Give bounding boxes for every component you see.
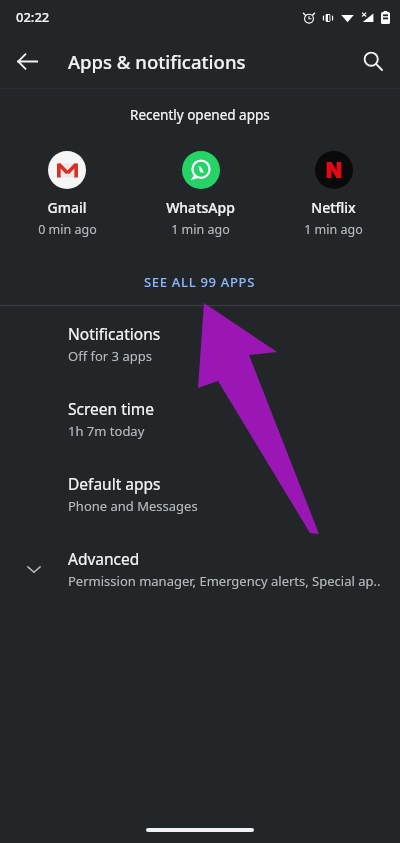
staticText: 1h 7m today bbox=[68, 422, 145, 440]
button[interactable]: SEE ALL 99 APPS bbox=[0, 262, 400, 302]
button[interactable]: Default apps bbox=[0, 456, 400, 531]
staticText: 02:22 bbox=[16, 8, 50, 26]
button[interactable]: Back bbox=[6, 40, 48, 82]
staticText: Permission manager, Emergency alerts, Sp… bbox=[68, 572, 381, 590]
staticText: 1 min ago bbox=[171, 221, 230, 238]
staticText: Notifications bbox=[68, 323, 161, 344]
button[interactable]: Notifications bbox=[0, 306, 400, 381]
button[interactable]: WhatsApp bbox=[134, 149, 267, 240]
staticText: Apps & notifications bbox=[68, 49, 246, 74]
button[interactable]: Netflix bbox=[267, 149, 400, 240]
button[interactable]: Search bbox=[352, 40, 394, 82]
button[interactable]: Gmail bbox=[0, 149, 134, 240]
staticText: 1 min ago bbox=[304, 221, 363, 238]
staticText: Default apps bbox=[68, 473, 161, 494]
staticText: Recently opened apps bbox=[130, 106, 270, 124]
staticText: Gmail bbox=[47, 198, 87, 217]
staticText: Screen time bbox=[68, 398, 154, 419]
staticText: WhatsApp bbox=[166, 198, 235, 217]
staticText: Advanced bbox=[68, 548, 140, 569]
button[interactable]: Advanced bbox=[0, 531, 400, 606]
staticText: Phone and Messages bbox=[68, 497, 198, 515]
staticText: Netflix bbox=[311, 198, 356, 217]
button[interactable]: Screen time bbox=[0, 381, 400, 456]
staticText: SEE ALL 99 APPS bbox=[144, 273, 256, 291]
staticText: Off for 3 apps bbox=[68, 347, 152, 365]
staticText: 0 min ago bbox=[38, 221, 97, 238]
